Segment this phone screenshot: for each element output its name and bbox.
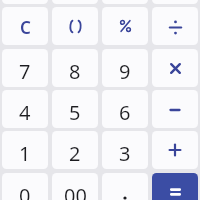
button[interactable] [52, 7, 98, 45]
button[interactable]: 4 [2, 90, 48, 128]
button[interactable]: C [2, 7, 48, 45]
staticText: 9 [119, 58, 131, 85]
button[interactable] [102, 173, 148, 200]
button[interactable]: 00 [52, 173, 98, 200]
staticText: C [20, 16, 31, 39]
staticText: 4 [19, 99, 31, 126]
button[interactable]: 6 [102, 90, 148, 128]
staticText: 2 [69, 140, 81, 167]
button[interactable]: 3 [102, 131, 148, 169]
staticText: 0 [19, 182, 31, 200]
button[interactable] [152, 49, 198, 87]
button[interactable]: 9 [102, 49, 148, 87]
staticText: 8 [69, 58, 81, 85]
staticText: 1 [19, 140, 31, 167]
button[interactable]: 2 [52, 131, 98, 169]
button[interactable] [152, 7, 198, 45]
button[interactable] [102, 7, 148, 45]
staticText: 3 [119, 140, 131, 167]
button[interactable] [152, 173, 198, 200]
button[interactable] [152, 131, 198, 169]
staticText: 7 [19, 58, 31, 85]
button[interactable] [152, 90, 198, 128]
staticText: 5 [69, 99, 81, 126]
staticText: 00 [64, 182, 87, 200]
button[interactable]: 0 [2, 173, 48, 200]
button[interactable]: 1 [2, 131, 48, 169]
button[interactable]: 5 [52, 90, 98, 128]
button[interactable]: 7 [2, 49, 48, 87]
staticText: 6 [119, 99, 131, 126]
button[interactable]: 8 [52, 49, 98, 87]
